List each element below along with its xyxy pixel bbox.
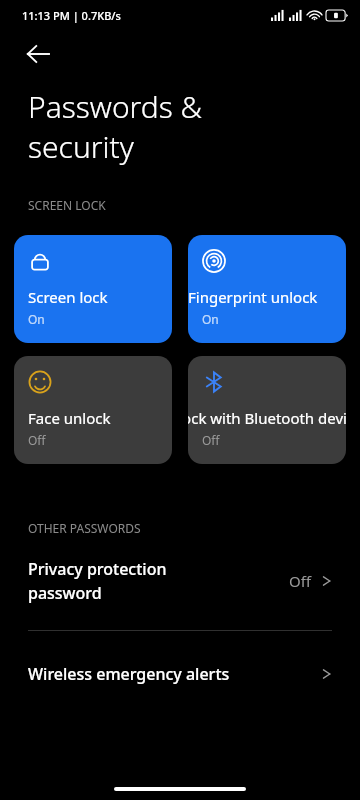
staticText: OTHER PASSWORDS (28, 520, 141, 536)
button[interactable]: Screen lock (14, 235, 172, 343)
staticText: SCREEN LOCK (28, 197, 106, 213)
staticText: Off (202, 432, 220, 448)
button[interactable]: Fingerprint unlock (188, 235, 346, 343)
button[interactable]: Back (14, 30, 62, 78)
button[interactable]: Face unlock (14, 356, 172, 464)
staticText: Passwords & security (28, 86, 203, 167)
button[interactable]: Privacy protection password (0, 558, 360, 604)
staticText: On (28, 311, 45, 327)
button[interactable]: Wireless emergency alerts (0, 663, 360, 685)
staticText: Unlock with Bluetooth device (188, 408, 346, 428)
staticText: Fingerprint unlock (188, 287, 318, 307)
staticText: Wireless emergency alerts (28, 663, 322, 685)
staticText: 11:13 PM | 0.7KB/s (22, 8, 121, 23)
staticText: Screen lock (28, 287, 108, 307)
staticText: Off (28, 432, 46, 448)
staticText: Privacy protection password (28, 558, 289, 604)
staticText: Face unlock (28, 408, 111, 428)
button[interactable]: Unlock with Bluetooth device (188, 356, 346, 464)
staticText: Off (289, 571, 312, 591)
staticText: On (202, 311, 219, 327)
